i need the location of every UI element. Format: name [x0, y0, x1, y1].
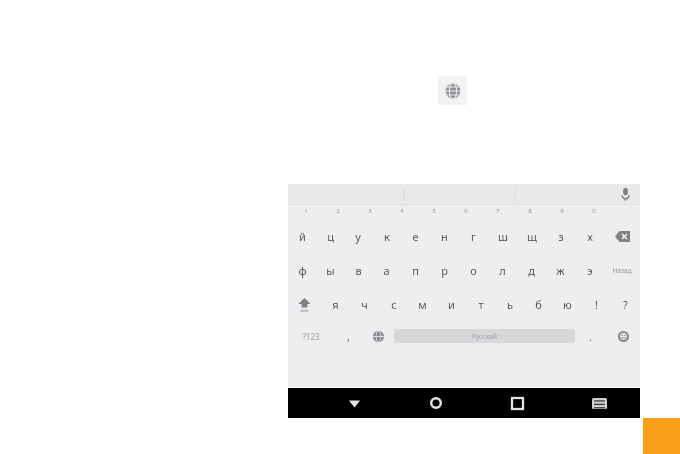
button[interactable]: Switch language	[363, 321, 394, 351]
button[interactable]: ж	[546, 253, 575, 287]
button[interactable]: Hide keyboard	[314, 388, 395, 418]
button[interactable]: Emoji	[606, 321, 640, 351]
staticText: 4	[400, 207, 404, 215]
staticText: Назад	[612, 266, 632, 275]
staticText: Русский	[472, 332, 497, 341]
staticText: 0	[592, 207, 596, 215]
staticText: ч	[361, 297, 368, 312]
button[interactable]: э	[575, 253, 604, 287]
staticText: д	[528, 263, 535, 278]
button[interactable]: у	[344, 219, 372, 253]
button[interactable]: е	[401, 219, 430, 253]
staticText: х	[587, 229, 593, 244]
staticText: я	[332, 297, 339, 312]
staticText: 5	[432, 207, 436, 215]
staticText: э	[587, 263, 593, 278]
button[interactable]: с	[379, 287, 408, 321]
button[interactable]: Change language	[438, 76, 467, 105]
button[interactable]: Recent apps	[476, 388, 558, 418]
button[interactable]: ы	[316, 253, 344, 287]
staticText: в	[355, 263, 362, 278]
button[interactable]: ?	[611, 287, 640, 321]
staticText: л	[499, 263, 506, 278]
staticText: о	[470, 263, 477, 278]
button[interactable]: ф	[288, 253, 316, 287]
button[interactable]: з	[546, 219, 575, 253]
button[interactable]: х	[575, 219, 604, 253]
staticText: ф	[298, 263, 307, 278]
staticText: ,	[347, 329, 350, 344]
button[interactable]: п	[401, 253, 430, 287]
staticText: е	[412, 229, 419, 244]
button[interactable]: щ	[517, 219, 546, 253]
button[interactable]: ю	[553, 287, 582, 321]
staticText: к	[384, 229, 390, 244]
button[interactable]: ?123	[288, 321, 333, 351]
button[interactable]: Voice input	[610, 184, 640, 205]
staticText: 1	[304, 207, 308, 215]
staticText: ц	[327, 229, 334, 244]
button[interactable]: Назад	[604, 253, 640, 287]
button[interactable]: т	[466, 287, 495, 321]
button[interactable]: г	[459, 219, 488, 253]
staticText: !	[595, 297, 598, 312]
staticText: щ	[527, 229, 537, 244]
staticText: 9	[560, 207, 564, 215]
staticText: а	[383, 263, 390, 278]
staticText: ж	[556, 263, 565, 278]
button[interactable]: р	[430, 253, 459, 287]
button[interactable]: а	[372, 253, 401, 287]
staticText: с	[391, 297, 397, 312]
button[interactable]: й	[288, 219, 316, 253]
button[interactable]: Русский	[394, 329, 575, 343]
button[interactable]: ь	[495, 287, 524, 321]
staticText: з	[558, 229, 564, 244]
button[interactable]: л	[488, 253, 517, 287]
button[interactable]: Backspace	[604, 219, 640, 253]
staticText: п	[412, 263, 419, 278]
button[interactable]: б	[524, 287, 553, 321]
button[interactable]: Shift	[288, 287, 321, 321]
staticText: .	[589, 329, 592, 344]
button[interactable]: о	[459, 253, 488, 287]
button[interactable]: в	[344, 253, 372, 287]
button[interactable]: !	[582, 287, 611, 321]
staticText: ?123	[302, 331, 320, 342]
button[interactable]: ш	[488, 219, 517, 253]
staticText: 3	[368, 207, 372, 215]
button[interactable]: н	[430, 219, 459, 253]
button[interactable]: Home	[395, 388, 476, 418]
staticText: 2	[336, 207, 340, 215]
staticText: ш	[498, 229, 508, 244]
button[interactable]: м	[408, 287, 437, 321]
staticText: ь	[507, 297, 513, 312]
button[interactable]: Switch keyboard	[558, 388, 640, 418]
button[interactable]: ц	[316, 219, 344, 253]
staticText: 7	[496, 207, 500, 215]
button[interactable]: к	[372, 219, 401, 253]
button[interactable]: и	[437, 287, 466, 321]
button[interactable]: я	[321, 287, 350, 321]
staticText: р	[441, 263, 448, 278]
staticText: н	[441, 229, 448, 244]
button[interactable]: д	[517, 253, 546, 287]
staticText: м	[418, 297, 427, 312]
staticText: ?	[623, 297, 628, 312]
staticText: т	[478, 297, 484, 312]
staticText: ы	[326, 263, 335, 278]
button[interactable]: ч	[350, 287, 379, 321]
staticText: ю	[563, 297, 572, 312]
staticText: г	[471, 229, 476, 244]
staticText: й	[299, 229, 306, 244]
staticText: и	[448, 297, 455, 312]
button[interactable]: ,	[333, 321, 363, 351]
staticText: 6	[464, 207, 468, 215]
button[interactable]: .	[575, 321, 606, 351]
staticText: б	[535, 297, 542, 312]
staticText: 8	[528, 207, 532, 215]
staticText: у	[355, 229, 361, 244]
